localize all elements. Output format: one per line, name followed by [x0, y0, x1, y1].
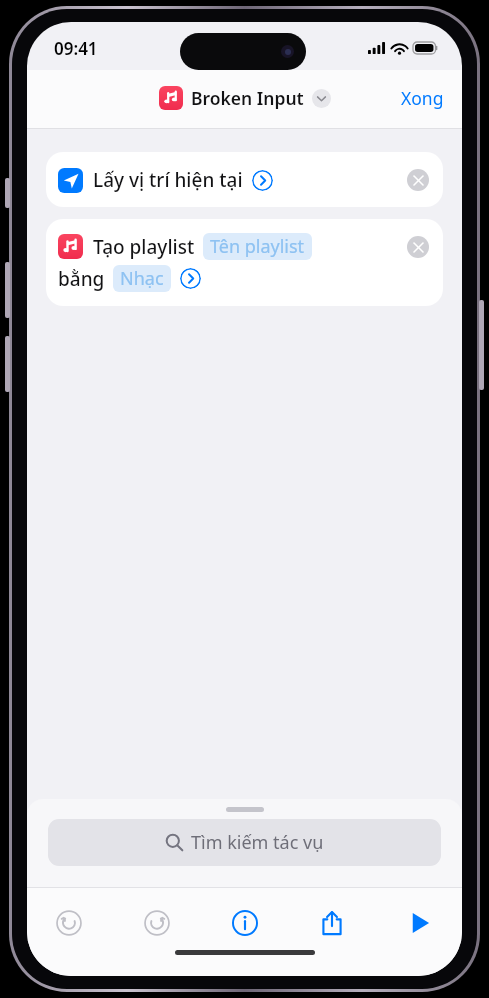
staticText: Tìm kiếm tác vụ — [191, 830, 324, 855]
button[interactable]: Show details — [180, 268, 201, 289]
button[interactable]: Tìm kiếm tác vụ — [48, 819, 441, 866]
staticText: Lấy vị trí hiện tại — [93, 167, 243, 193]
button[interactable]: Information — [217, 896, 273, 950]
button[interactable]: Redo — [129, 896, 185, 950]
button[interactable]: Tạo playlist — [46, 219, 443, 306]
button[interactable]: Lấy vị trí hiện tại — [46, 152, 443, 207]
staticText: 09:41 — [54, 37, 98, 60]
button[interactable]: Tên playlist — [203, 233, 312, 260]
button[interactable]: Undo — [41, 896, 97, 950]
button[interactable]: Xong — [383, 80, 462, 116]
staticText: Broken Input — [191, 86, 304, 110]
button[interactable]: Show details — [252, 170, 273, 191]
button[interactable]: Broken Input — [159, 86, 331, 110]
staticText: Nhạc — [120, 266, 164, 291]
button[interactable]: Share — [304, 896, 360, 950]
button[interactable]: Nhạc — [113, 265, 171, 292]
button[interactable]: Remove action — [407, 236, 429, 258]
staticText: Tên playlist — [210, 234, 305, 259]
staticText: Xong — [401, 86, 444, 110]
staticText: Tạo playlist — [93, 234, 195, 260]
staticText: bằng — [58, 266, 105, 292]
button[interactable]: Remove action — [407, 169, 429, 191]
button[interactable]: Run — [392, 896, 448, 950]
